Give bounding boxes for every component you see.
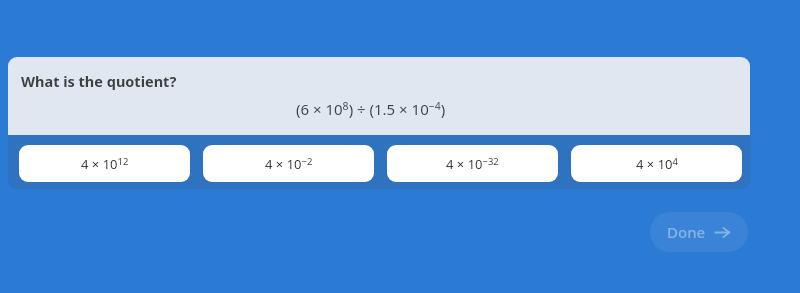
button[interactable]: Done: [650, 212, 748, 252]
staticText: 4 × 1012: [81, 155, 129, 173]
button[interactable]: 4 × 10−32: [387, 145, 558, 182]
staticText: (6 × 108) ÷ (1.5 × 10−4): [296, 99, 446, 119]
button[interactable]: 4 × 10−2: [203, 145, 374, 182]
staticText: What is the quotient?: [21, 71, 177, 91]
staticText: 4 × 10−32: [446, 155, 499, 173]
staticText: 4 × 10−2: [265, 155, 313, 173]
button[interactable]: 4 × 104: [571, 145, 742, 182]
staticText: Done: [667, 222, 706, 242]
other: Done, continue: [714, 224, 731, 241]
button[interactable]: 4 × 1012: [19, 145, 190, 182]
staticText: 4 × 104: [636, 155, 678, 173]
